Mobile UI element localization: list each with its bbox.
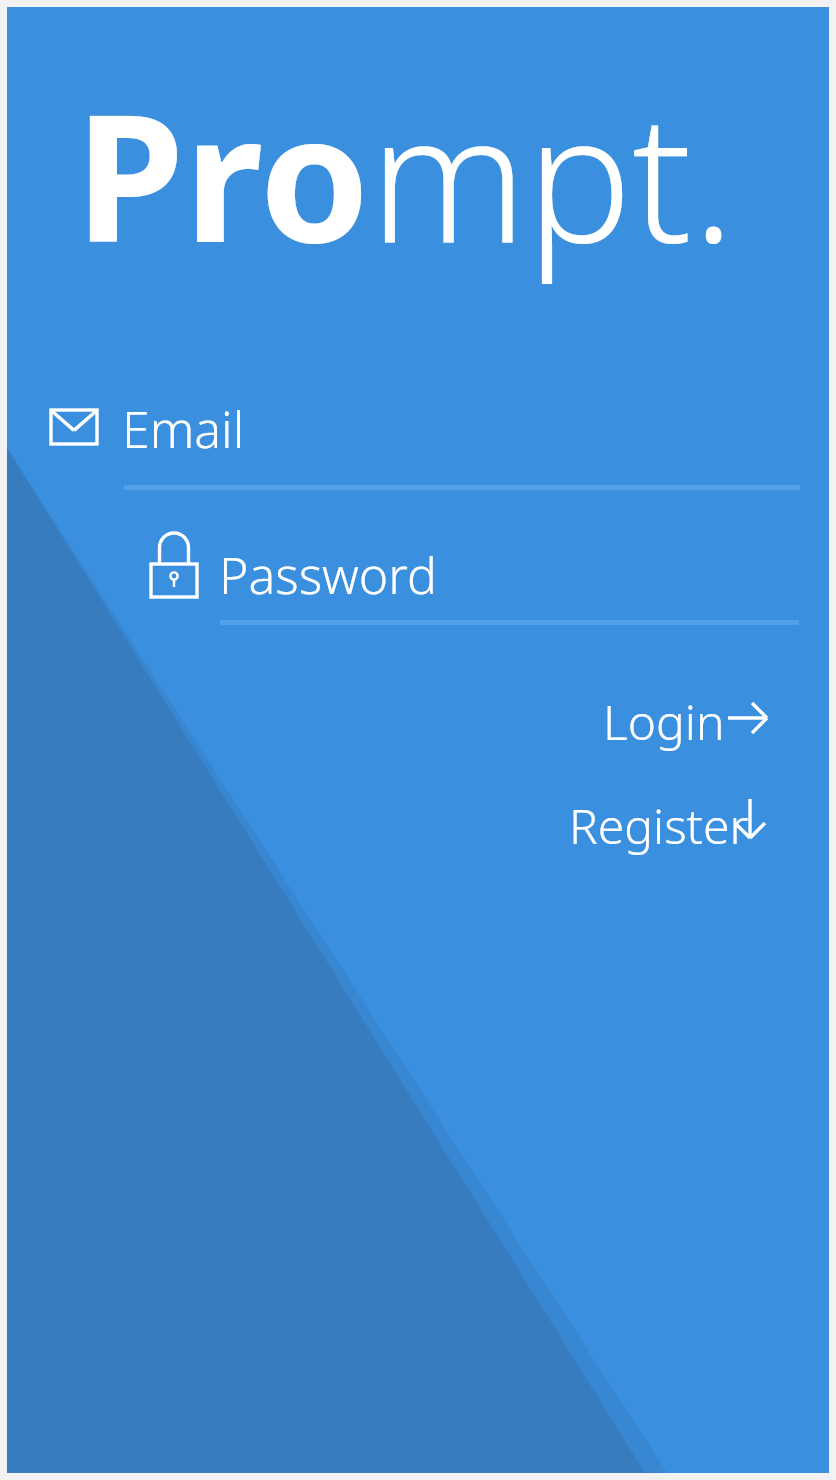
button[interactable]: Email bbox=[37, 395, 803, 495]
staticText: Login bbox=[603, 689, 725, 754]
button[interactable]: Register bbox=[552, 779, 803, 865]
staticText: Register bbox=[569, 793, 749, 858]
staticText: Email bbox=[122, 395, 245, 463]
staticText: Prompt. bbox=[75, 54, 735, 294]
staticText: Password bbox=[219, 541, 437, 609]
button[interactable]: Password bbox=[137, 527, 803, 637]
button[interactable]: Login bbox=[567, 675, 803, 761]
other: Password bbox=[143, 533, 205, 605]
other: Email bbox=[45, 402, 103, 452]
